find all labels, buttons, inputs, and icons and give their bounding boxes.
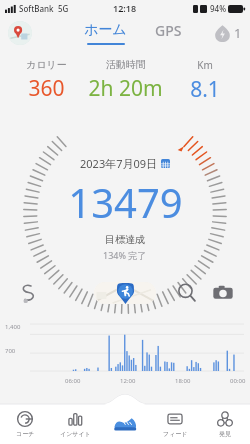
- button[interactable]: GPS: [149, 22, 188, 45]
- staticText: ホーム: [84, 21, 127, 39]
- staticText: 8.1: [190, 75, 220, 104]
- staticText: Km: [197, 58, 213, 72]
- button[interactable]: Profile: [8, 21, 32, 45]
- button[interactable]: 発見: [200, 404, 250, 444]
- staticText: 18:00: [175, 377, 191, 385]
- staticText: 1,400: [5, 323, 21, 331]
- staticText: コーチ: [16, 430, 35, 438]
- button[interactable]: 活動時間: [86, 56, 165, 105]
- button[interactable]: インサイト: [50, 404, 100, 444]
- button[interactable]: カロリー: [6, 56, 86, 105]
- staticText: 00:00: [230, 377, 246, 385]
- button[interactable]: コーチ: [0, 404, 50, 444]
- button[interactable]: Map route: [94, 282, 156, 304]
- staticText: 12:00: [120, 377, 136, 385]
- staticText: 2h 20m: [88, 74, 163, 103]
- staticText: 13479: [68, 175, 183, 229]
- button[interactable]: Activity: [108, 407, 142, 441]
- staticText: 目標達成: [105, 233, 145, 246]
- button[interactable]: Camera: [212, 282, 234, 304]
- staticText: 06:00: [65, 377, 81, 385]
- staticText: 700: [5, 347, 16, 355]
- button[interactable]: Km: [165, 56, 244, 106]
- staticText: 2023年7月09日: [80, 156, 158, 171]
- staticText: フィード: [163, 430, 188, 438]
- button[interactable]: 1,400: [0, 314, 250, 386]
- staticText: 12:18: [113, 2, 137, 14]
- button[interactable]: Shoe settings: [16, 282, 38, 304]
- button[interactable]: Search: [176, 282, 198, 304]
- button[interactable]: Streak: [214, 24, 242, 42]
- staticText: インサイト: [60, 430, 91, 438]
- other: Calendar: [161, 159, 170, 168]
- staticText: 発見: [219, 430, 231, 438]
- staticText: 134% 完了: [103, 249, 147, 261]
- staticText: SoftBank: [19, 3, 54, 14]
- staticText: 94%: [210, 3, 226, 14]
- staticText: 5G: [58, 3, 69, 14]
- staticText: GPS: [155, 21, 182, 40]
- button[interactable]: フィード: [150, 404, 200, 444]
- button[interactable]: ホーム: [78, 19, 133, 47]
- staticText: カロリー: [26, 58, 67, 71]
- staticText: 1: [234, 24, 242, 42]
- staticText: 360: [28, 74, 65, 103]
- staticText: 活動時間: [106, 58, 146, 71]
